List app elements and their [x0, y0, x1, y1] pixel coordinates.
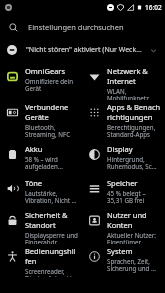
- staticText: 16:02: [145, 3, 162, 12]
- staticText: "Nicht stören" aktiviert (Nur Weck…: [26, 45, 142, 55]
- staticText: 58 % – wird aufgeladen…: [25, 155, 78, 171]
- staticText: WLAN, Mobilfunknetz, …: [107, 87, 161, 100]
- other: Erweitern: [149, 46, 158, 55]
- staticText: Displaysperre und Fingerabdr…: [25, 231, 78, 244]
- button[interactable]: Bedienungshilfen: [0, 244, 82, 277]
- button[interactable]: Verbundene Geräte: [0, 100, 82, 142]
- button[interactable]: Nutzer und Konten: [82, 208, 165, 244]
- staticText: Aktueller Nutzer: Eigentümer: [107, 231, 161, 244]
- button[interactable]: System: [82, 244, 165, 277]
- staticText: Speicher: [107, 178, 138, 188]
- button[interactable]: Suchen: [0, 15, 165, 39]
- staticText: Akku: [25, 144, 43, 154]
- other: Suchen: [9, 23, 18, 32]
- staticText: Hintergrund, Ruhemodus, Sc…: [107, 155, 161, 171]
- button[interactable]: OmniGears: [0, 64, 82, 100]
- staticText: Netzwerk & Internet: [107, 66, 161, 86]
- button[interactable]: "Nicht stören" aktiviert (Nur Weck…: [0, 39, 165, 61]
- staticText: Töne: [25, 178, 43, 188]
- staticText: Berechtigungen, Standard-Apps: [107, 123, 161, 139]
- staticText: Apps & Benachrichtigungen: [107, 102, 161, 122]
- button[interactable]: Speicher: [82, 176, 165, 208]
- button[interactable]: Netzwerk & Internet: [82, 64, 165, 100]
- button[interactable]: Töne: [0, 176, 82, 208]
- staticText: Screenreader, Display, Interakt…: [25, 267, 78, 277]
- staticText: Bedienungshilfen: [25, 246, 78, 266]
- button[interactable]: Apps & Benachrichtigungen: [82, 100, 165, 142]
- staticText: Omnifiziere dein Gerät: [25, 77, 78, 93]
- staticText: Nutzer und Konten: [107, 210, 161, 230]
- staticText: Display: [107, 144, 133, 154]
- staticText: Sicherheit & Standort: [25, 210, 78, 230]
- button[interactable]: Sicherheit & Standort: [0, 208, 82, 244]
- staticText: Lautstärke, Vibration, Nicht …: [25, 189, 78, 205]
- staticText: 45 % belegt – 35,31 GB frei: [107, 189, 161, 205]
- staticText: OmniGears: [25, 66, 66, 76]
- staticText: Einstellungen durchsuchen: [28, 22, 124, 32]
- button[interactable]: Display: [82, 142, 165, 176]
- staticText: System: [107, 246, 133, 256]
- staticText: Bluetooth, Streaming, NFC: [25, 123, 78, 139]
- staticText: Verbundene Geräte: [25, 102, 78, 122]
- staticText: Sprachen, Zeit, Sicherung und …: [107, 257, 161, 273]
- button[interactable]: Akku: [0, 142, 82, 176]
